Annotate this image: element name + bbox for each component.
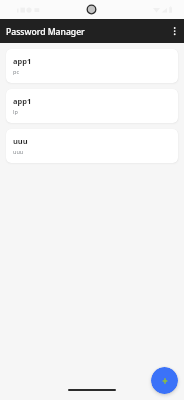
button[interactable]: app1	[6, 89, 178, 123]
staticText: app1	[13, 96, 32, 106]
staticText: Password Manager	[6, 26, 85, 38]
staticText: uuu	[13, 136, 28, 146]
button[interactable]: Add password	[151, 367, 178, 394]
staticText: app1	[13, 56, 32, 66]
button[interactable]: More options	[164, 19, 184, 43]
staticText: lp	[13, 108, 18, 115]
staticText: pc	[13, 68, 20, 75]
staticText: uuu	[13, 148, 24, 155]
button[interactable]: app1	[6, 49, 178, 83]
button[interactable]: uuu	[6, 129, 178, 163]
